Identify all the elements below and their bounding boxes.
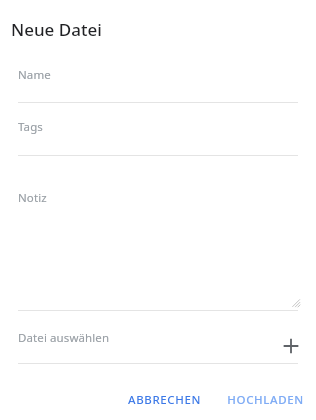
staticText: Neue Datei bbox=[11, 18, 102, 41]
staticText: Tags bbox=[18, 119, 43, 135]
staticText: Notiz bbox=[18, 190, 47, 206]
other: Resize note field bbox=[292, 299, 300, 307]
button[interactable]: Notiz bbox=[0, 183, 316, 310]
button[interactable]: HOCHLADEN bbox=[221, 387, 310, 413]
staticText: Name bbox=[18, 67, 51, 83]
staticText: HOCHLADEN bbox=[227, 392, 304, 408]
button[interactable]: ABBRECHEN bbox=[122, 387, 207, 413]
button[interactable]: Tags bbox=[0, 112, 316, 155]
button[interactable]: Datei hinzufügen bbox=[277, 332, 305, 360]
staticText: Datei auswählen bbox=[18, 330, 110, 346]
button[interactable]: Datei auswählen bbox=[0, 320, 316, 363]
button[interactable]: Name bbox=[0, 60, 316, 103]
staticText: ABBRECHEN bbox=[128, 392, 201, 408]
